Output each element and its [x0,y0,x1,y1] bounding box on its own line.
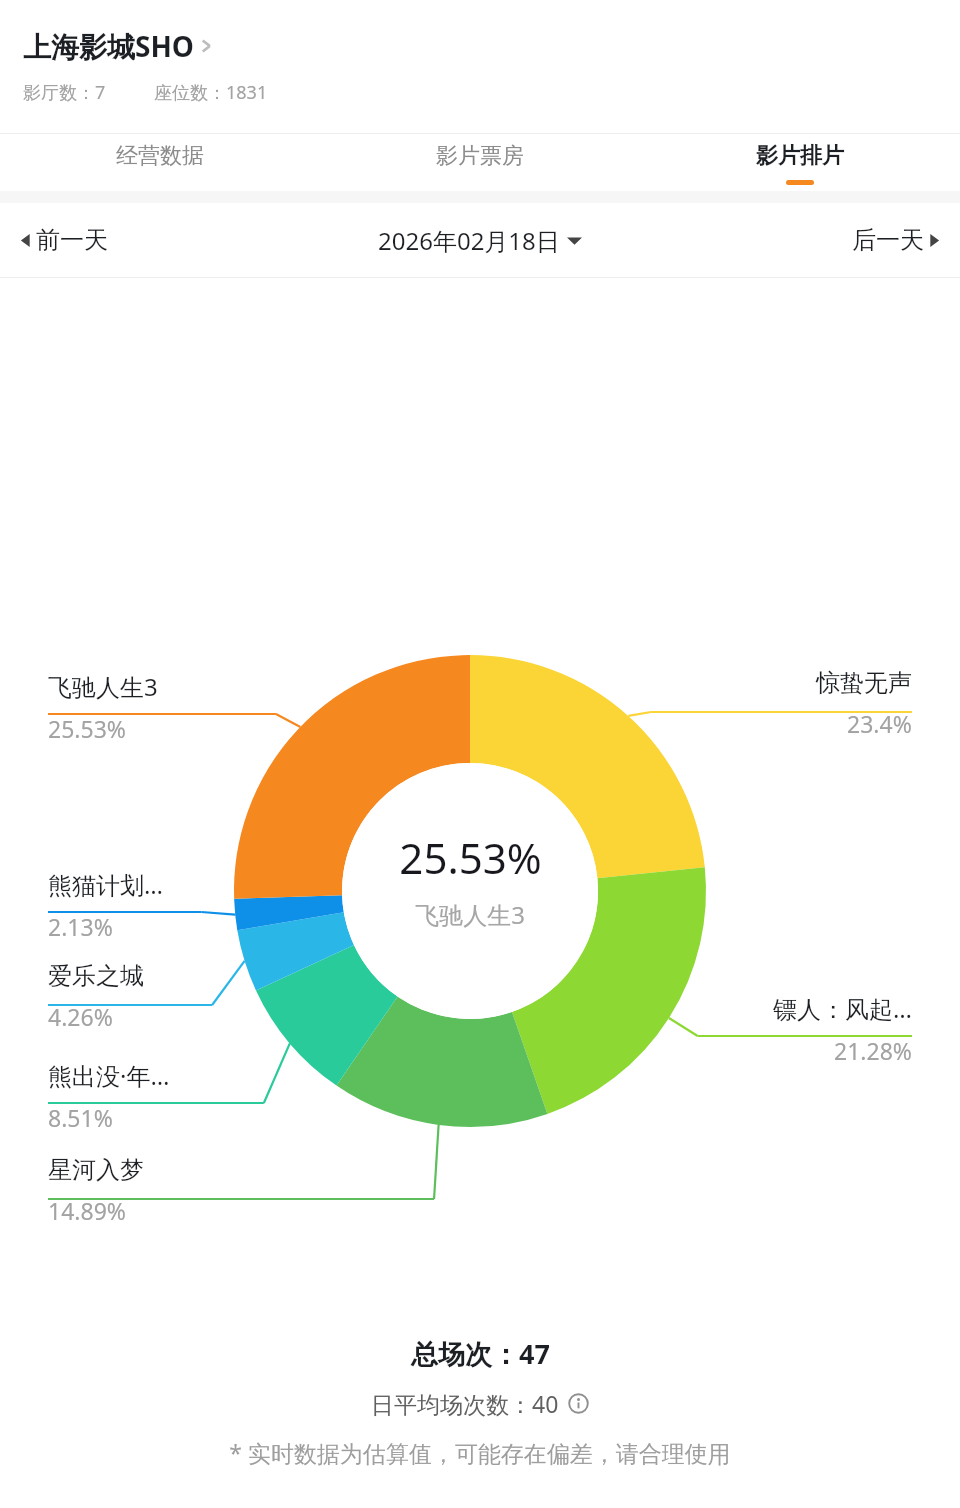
button[interactable]: 熊出没·年… [48,1059,170,1133]
button[interactable]: 上海影城SHO [23,25,228,67]
staticText: 14.89% [48,1195,126,1226]
staticText: 日平均场次数：40 [371,1388,559,1419]
button[interactable]: 星河入梦 [48,1155,144,1226]
staticText: 飞驰人生3 [48,670,158,703]
button[interactable]: 经营数据 [0,134,320,191]
button[interactable]: 影片排片 [640,134,960,191]
staticText: 经营数据 [116,142,204,170]
staticText: 熊猫计划… [48,868,163,901]
other: 前一天 [20,232,31,249]
button[interactable]: 镖人：风起… [773,992,912,1066]
staticText: 座位数：1831 [154,80,268,105]
staticText: 上海影城SHO [23,27,194,65]
button[interactable]: 前一天 [12,217,116,263]
button[interactable]: 2026年02月18日 [370,216,590,265]
staticText: 爱乐之城 [48,961,144,991]
staticText: 25.53% [48,713,126,744]
button[interactable]: 熊猫计划… [48,868,163,942]
staticText: 星河入梦 [48,1155,144,1185]
button[interactable]: 后一天 [844,217,948,263]
staticText: 总场次：47 [411,1335,550,1372]
button[interactable]: 影片票房 [320,134,640,191]
staticText: 2026年02月18日 [378,224,560,257]
staticText: 后一天 [852,225,924,255]
staticText: 4.26% [48,1001,113,1032]
staticText: 飞驰人生3 [415,898,525,931]
staticText: * 实时数据为估算值，可能存在偏差，请合理使用 [229,1437,731,1468]
staticText: 影厅数：7 [23,80,106,105]
staticText: 前一天 [36,225,108,255]
staticText: 2.13% [48,911,113,942]
staticText: 镖人：风起… [773,992,912,1025]
staticText: 熊出没·年… [48,1059,170,1092]
button[interactable]: 爱乐之城 [48,961,144,1032]
button[interactable]: 飞驰人生3 [48,670,158,744]
staticText: 惊蛰无声 [816,668,912,698]
staticText: 21.28% [834,1035,912,1066]
staticText: 25.53% [399,829,542,886]
staticText: 8.51% [48,1102,113,1133]
other: 说明 [568,1393,589,1414]
other: 后一天 [929,232,940,249]
staticText: 影片票房 [436,142,524,170]
button[interactable]: 惊蛰无声 [816,668,912,739]
staticText: 23.4% [847,708,912,739]
staticText: 影片排片 [756,142,844,170]
